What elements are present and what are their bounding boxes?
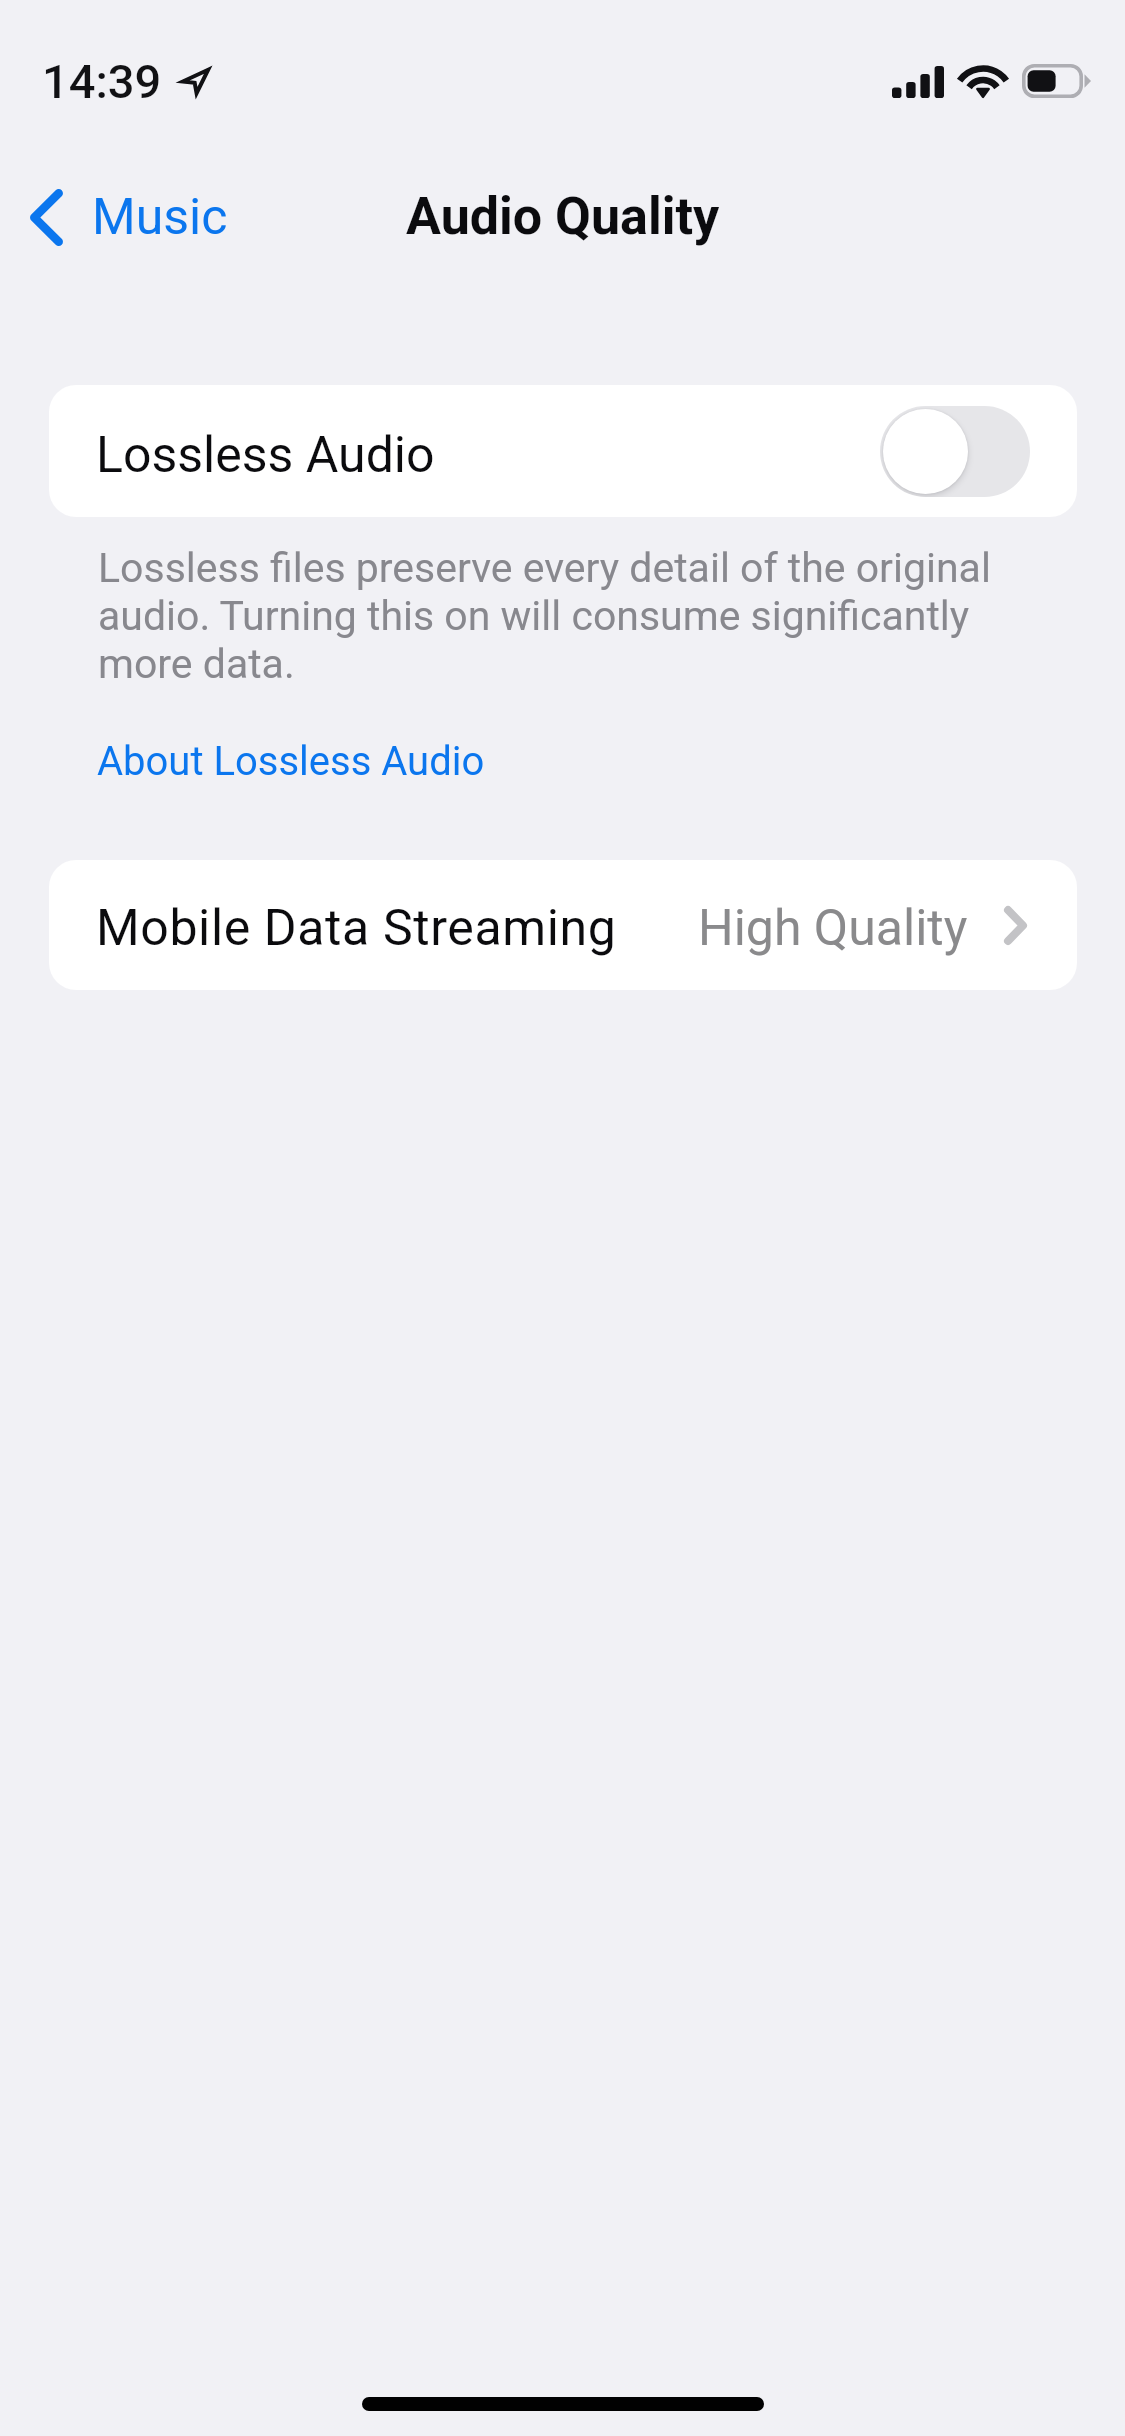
button[interactable]: Mobile Data Streaming — [49, 860, 1077, 990]
staticText: About Lossless Audio — [97, 738, 485, 785]
staticText: Audio Quality — [406, 186, 720, 247]
button[interactable]: Back to Music — [13, 167, 242, 267]
button[interactable]: Lossless Audio toggle — [880, 406, 1030, 497]
button[interactable]: Lossless Audio — [49, 385, 1077, 517]
staticText: Lossless Audio — [96, 426, 435, 485]
staticText: Lossless files preserve every detail of … — [98, 544, 1028, 688]
button[interactable]: About Lossless Audio — [97, 738, 485, 785]
staticText: High Quality — [698, 899, 968, 958]
staticText: Mobile Data Streaming — [96, 899, 617, 958]
staticText: Music — [92, 188, 228, 247]
staticText: 14:39 — [42, 54, 162, 109]
